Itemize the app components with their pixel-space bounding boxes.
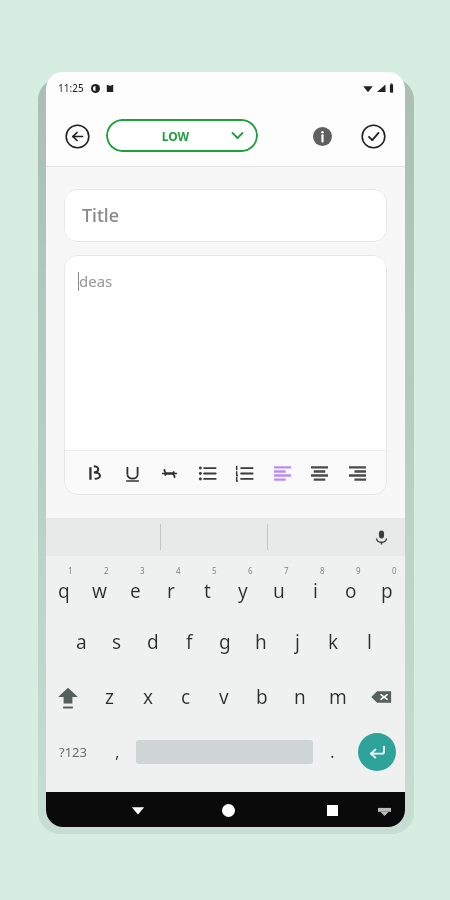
button[interactable]: s [99, 614, 135, 669]
staticText: 7 [284, 565, 289, 576]
button[interactable]: Save [357, 120, 389, 152]
staticText: f [186, 629, 193, 655]
button[interactable]: Backspace [357, 669, 405, 724]
button[interactable]: m [319, 669, 357, 724]
staticText: s [112, 629, 122, 655]
staticText: l [367, 629, 372, 655]
staticText: 11:25 [58, 81, 84, 95]
button[interactable]: Bold [80, 459, 108, 487]
staticText: 5 [212, 565, 217, 576]
staticText: 1 [68, 565, 73, 576]
button[interactable]: 0 [369, 559, 405, 614]
staticText: 4 [176, 565, 181, 576]
staticText: j [295, 629, 300, 655]
button[interactable]: ?123 [46, 724, 100, 779]
button[interactable]: b [243, 669, 281, 724]
staticText: q [58, 578, 70, 604]
button[interactable]: 6 [225, 559, 261, 614]
button[interactable]: , [100, 724, 134, 779]
button[interactable]: Title [64, 189, 387, 242]
staticText: Title [82, 203, 120, 228]
staticText: LOW [120, 128, 231, 144]
staticText: o [345, 578, 357, 604]
button[interactable]: Home [213, 795, 243, 825]
staticText: a [76, 629, 87, 655]
button[interactable]: Align right [343, 459, 371, 487]
button[interactable]: Back [62, 121, 92, 151]
staticText: . [330, 740, 335, 763]
button[interactable]: 1 [46, 559, 81, 614]
button[interactable]: 8 [297, 559, 333, 614]
staticText: u [273, 578, 285, 604]
button[interactable]: l [351, 614, 387, 669]
staticText: 0 [392, 565, 397, 576]
staticText: 6 [248, 565, 253, 576]
button[interactable]: 9 [333, 559, 369, 614]
button[interactable]: Numbered list [230, 459, 258, 487]
staticText: t [204, 578, 211, 604]
button[interactable]: Voice input [369, 525, 393, 549]
button[interactable]: f [171, 614, 207, 669]
button[interactable]: n [281, 669, 319, 724]
button[interactable]: a [64, 614, 99, 669]
staticText: ?123 [59, 743, 87, 761]
button[interactable]: g [207, 614, 243, 669]
button[interactable]: Underline [118, 459, 146, 487]
button[interactable]: x [129, 669, 167, 724]
button[interactable]: Shift [46, 669, 90, 724]
staticText: m [329, 684, 347, 710]
staticText: 9 [356, 565, 361, 576]
button[interactable]: k [315, 614, 351, 669]
staticText: deas [79, 271, 113, 291]
button[interactable]: Info [307, 121, 337, 151]
staticText: i [313, 578, 318, 604]
button[interactable]: Bulleted list [193, 459, 221, 487]
button[interactable]: z [90, 669, 129, 724]
button[interactable]: deas [64, 255, 387, 450]
button[interactable]: 7 [261, 559, 297, 614]
button[interactable]: h [243, 614, 279, 669]
button[interactable]: LOW [106, 119, 258, 152]
staticText: c [181, 684, 191, 710]
button[interactable]: Strikethrough [155, 459, 183, 487]
staticText: h [255, 629, 267, 655]
button[interactable]: Recents [317, 795, 347, 825]
staticText: y [238, 578, 248, 604]
button[interactable]: 2 [81, 559, 117, 614]
button[interactable]: . [315, 724, 349, 779]
staticText: d [147, 629, 159, 655]
button[interactable]: Align left [268, 459, 296, 487]
staticText: v [219, 684, 229, 710]
staticText: 8 [320, 565, 325, 576]
staticText: , [115, 740, 120, 763]
button[interactable]: Enter [358, 733, 396, 771]
button[interactable]: 3 [117, 559, 153, 614]
button[interactable]: j [279, 614, 315, 669]
button[interactable]: Align center [305, 459, 333, 487]
staticText: z [105, 684, 114, 710]
staticText: p [381, 578, 393, 604]
staticText: b [256, 684, 268, 710]
staticText: x [143, 684, 154, 710]
staticText: r [167, 578, 175, 604]
button[interactable]: 4 [153, 559, 189, 614]
button[interactable]: v [205, 669, 243, 724]
staticText: 3 [140, 565, 145, 576]
button[interactable]: Switch keyboard [371, 797, 397, 823]
staticText: w [92, 578, 107, 604]
staticText: g [219, 629, 231, 655]
staticText: 2 [104, 565, 109, 576]
button[interactable]: c [167, 669, 205, 724]
button[interactable]: Back [123, 795, 153, 825]
staticText: n [294, 684, 306, 710]
staticText: k [328, 629, 339, 655]
button[interactable]: d [135, 614, 171, 669]
button[interactable]: 5 [189, 559, 225, 614]
staticText: e [130, 578, 141, 604]
